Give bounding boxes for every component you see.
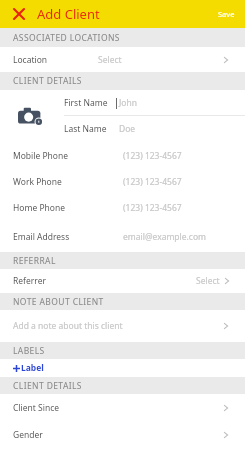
button[interactable]: Add a note about this client bbox=[0, 310, 245, 342]
staticText: Doe bbox=[119, 123, 136, 135]
staticText: LABELS bbox=[13, 345, 45, 357]
staticText: REFERRAL bbox=[13, 255, 56, 267]
staticText: (123) 123-4567 bbox=[123, 150, 182, 162]
button[interactable]: Close bbox=[8, 3, 30, 25]
staticText: NOTE ABOUT CLIENT bbox=[13, 296, 104, 308]
button[interactable]: Mobile Phone bbox=[0, 142, 245, 169]
button[interactable]: Save bbox=[208, 0, 245, 28]
staticText: Select bbox=[98, 54, 122, 66]
staticText: CLIENT DETAILS bbox=[13, 75, 82, 87]
staticText: Email Address bbox=[13, 231, 70, 243]
staticText: Mobile Phone bbox=[13, 150, 69, 162]
staticText: Client Since bbox=[13, 402, 60, 414]
button[interactable]: Client Since bbox=[0, 394, 245, 421]
button[interactable]: Label bbox=[11, 360, 46, 376]
staticText: ASSOCIATED LOCATIONS bbox=[13, 32, 120, 44]
staticText: Work Phone bbox=[13, 176, 62, 188]
staticText: Home Phone bbox=[13, 202, 65, 214]
staticText: Label bbox=[21, 362, 44, 374]
button[interactable]: Last Name bbox=[0, 116, 245, 142]
staticText: (123) 123-4567 bbox=[123, 202, 182, 214]
button[interactable]: Location bbox=[0, 47, 245, 72]
staticText: Add a note about this client bbox=[13, 320, 123, 332]
button[interactable]: Email Address bbox=[0, 221, 245, 252]
staticText: Last Name bbox=[64, 123, 107, 135]
button[interactable]: Referrer bbox=[0, 269, 245, 293]
button[interactable]: Home Phone bbox=[0, 195, 245, 221]
button[interactable]: Gender bbox=[0, 421, 245, 448]
staticText: Select bbox=[196, 275, 220, 287]
staticText: (123) 123-4567 bbox=[123, 176, 182, 188]
staticText: Referrer bbox=[13, 275, 46, 287]
button[interactable]: Work Phone bbox=[0, 169, 245, 195]
button[interactable]: First Name bbox=[0, 90, 245, 116]
staticText: Gender bbox=[13, 429, 43, 441]
staticText: Save bbox=[218, 9, 235, 19]
staticText: Location bbox=[13, 54, 48, 66]
staticText: email@example.com bbox=[123, 231, 207, 243]
staticText: First Name bbox=[64, 97, 108, 109]
staticText: John bbox=[119, 97, 137, 109]
staticText: CLIENT DETAILS bbox=[13, 380, 82, 392]
staticText: Add Client bbox=[37, 5, 100, 23]
